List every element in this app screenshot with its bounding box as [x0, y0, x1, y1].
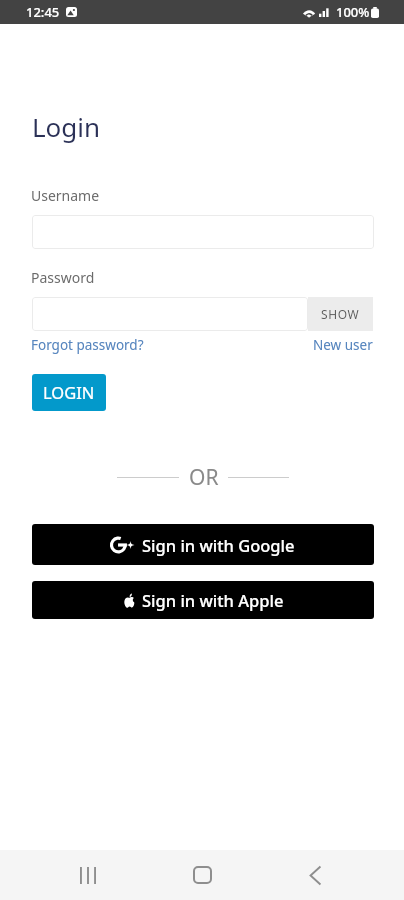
button[interactable]: Home — [178, 851, 226, 899]
button[interactable]: Password field — [32, 297, 308, 331]
staticText: Sign in with Apple — [142, 589, 284, 611]
button[interactable]: Username field — [32, 215, 374, 249]
button[interactable]: SHOW — [308, 297, 373, 331]
staticText: OR — [189, 463, 219, 492]
staticText: Login — [32, 109, 101, 144]
staticText: 12:45 — [26, 3, 60, 21]
button[interactable]: Recent apps — [64, 851, 112, 899]
button[interactable]: Back — [291, 851, 339, 899]
staticText: 100% — [336, 3, 370, 21]
button[interactable]: LOGIN — [32, 374, 106, 411]
staticText: Sign in with Google — [142, 534, 295, 556]
button[interactable]: Sign in with Google — [32, 524, 374, 565]
staticText: LOGIN — [43, 381, 95, 403]
button[interactable]: Sign in with Apple — [32, 581, 374, 619]
staticText: Password — [31, 268, 95, 287]
button[interactable]: New user — [313, 336, 373, 354]
button[interactable]: Forgot password? — [31, 336, 144, 354]
staticText: SHOW — [321, 306, 360, 322]
staticText: Username — [31, 186, 100, 205]
